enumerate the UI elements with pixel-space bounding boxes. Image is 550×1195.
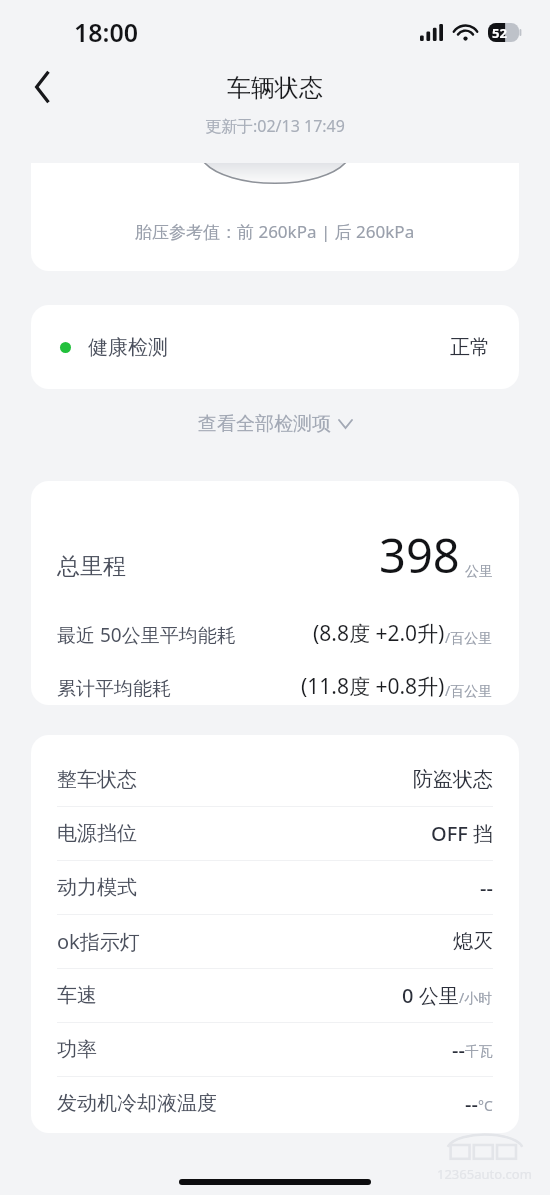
button[interactable]: 健康检测 <box>31 305 519 389</box>
staticText: 胎压参考值：前 260kPa | 后 260kPa <box>135 220 415 243</box>
staticText: 功率 <box>57 1037 97 1062</box>
staticText: 健康检测 <box>88 335 168 360</box>
staticText: 12365auto.com <box>437 1165 532 1183</box>
button[interactable]: 整车状态 <box>57 753 493 806</box>
staticText: OFF 挡 <box>431 820 493 847</box>
staticText: /小时 <box>459 988 493 1007</box>
staticText: 查看全部检测项 <box>198 412 331 436</box>
button[interactable]: 车速 <box>57 969 493 1022</box>
button[interactable]: 总里程 <box>31 481 519 705</box>
staticText: 车速 <box>57 983 97 1008</box>
staticText: -- <box>480 874 493 901</box>
staticText: 车辆状态 <box>227 73 323 103</box>
staticText: 熄灭 <box>453 929 493 954</box>
staticText: 累计平均能耗 <box>57 677 171 701</box>
button[interactable]: 发动机冷却液温度 <box>57 1077 493 1130</box>
staticText: 动力模式 <box>57 875 137 900</box>
staticText: -- <box>465 1090 478 1117</box>
staticText: ok指示灯 <box>57 928 140 955</box>
staticText: 0 公里 <box>402 982 459 1009</box>
staticText: (11.8度 +0.8升) <box>301 672 445 701</box>
staticText: -- <box>452 1036 465 1063</box>
button[interactable]: 查看全部检测项 <box>190 408 360 440</box>
staticText: 总里程 <box>57 552 126 581</box>
staticText: 千瓦 <box>465 1043 493 1061</box>
staticText: /百公里 <box>445 628 493 647</box>
staticText: 正常 <box>450 335 490 360</box>
staticText: °C <box>478 1096 493 1115</box>
button[interactable]: ok指示灯 <box>57 915 493 968</box>
staticText: 最近 50公里平均能耗 <box>57 622 236 648</box>
staticText: 398 <box>379 523 460 587</box>
button[interactable]: 胎压参考值：前 260kPa | 后 260kPa <box>31 163 519 271</box>
staticText: 电源挡位 <box>57 821 137 846</box>
staticText: 整车状态 <box>57 767 137 792</box>
staticText: (8.8度 +2.0升) <box>313 619 445 648</box>
button[interactable]: Back <box>20 64 66 110</box>
staticText: 更新于:02/13 17:49 <box>205 115 345 137</box>
button[interactable]: 功率 <box>57 1023 493 1076</box>
staticText: 公里 <box>465 563 493 581</box>
staticText: /百公里 <box>445 681 493 700</box>
staticText: 52 <box>492 24 507 42</box>
staticText: 18:00 <box>74 15 139 49</box>
staticText: 防盗状态 <box>413 767 493 792</box>
button[interactable]: 动力模式 <box>57 861 493 914</box>
staticText: 发动机冷却液温度 <box>57 1091 217 1116</box>
button[interactable]: 电源挡位 <box>57 807 493 860</box>
